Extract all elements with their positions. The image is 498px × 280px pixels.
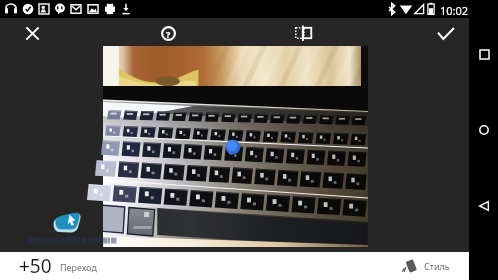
button[interactable]: Back bbox=[474, 196, 494, 216]
button[interactable]: Done bbox=[434, 22, 457, 45]
button[interactable]: +50 bbox=[19, 253, 97, 279]
button[interactable]: Crop bbox=[292, 22, 315, 45]
staticText: 10:02 bbox=[440, 3, 469, 18]
button[interactable]: Recents bbox=[474, 44, 494, 64]
button[interactable]: Help bbox=[157, 22, 180, 45]
staticText: Переход bbox=[60, 261, 97, 273]
staticText: Стиль bbox=[424, 260, 450, 272]
staticText: ? bbox=[166, 28, 171, 40]
button[interactable]: Home bbox=[474, 120, 494, 140]
staticText: +50 bbox=[19, 253, 52, 279]
button[interactable]: Close bbox=[21, 22, 44, 45]
button[interactable]: Стиль bbox=[402, 258, 450, 274]
